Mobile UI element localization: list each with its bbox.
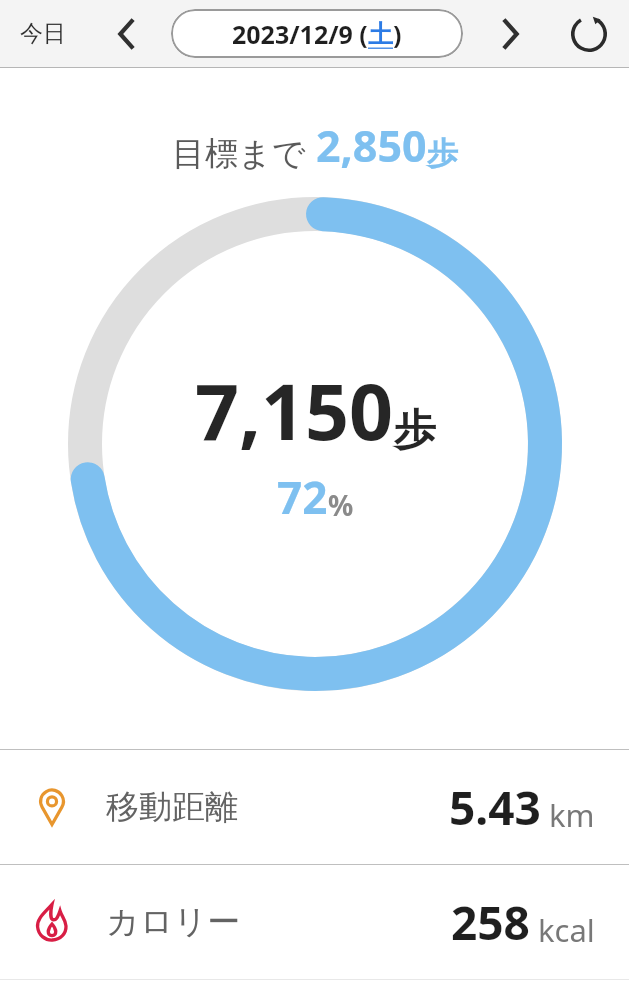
other: Calories [32, 902, 72, 942]
button[interactable]: 2023/12/9 ( [171, 9, 463, 58]
staticText: 土 [368, 19, 393, 50]
button[interactable]: Distance [0, 750, 629, 864]
button[interactable]: 今日 [14, 13, 72, 54]
staticText: 258 [451, 891, 530, 954]
button[interactable]: Previous day [104, 12, 148, 56]
staticText: 2023/12/9 ( [232, 17, 368, 51]
staticText: 移動距離 [106, 786, 238, 828]
staticText: 2,850 [316, 116, 427, 175]
staticText: カロリー [106, 901, 241, 943]
other: Distance [32, 787, 72, 827]
button[interactable]: Calories [0, 865, 629, 979]
staticText: 今日 [20, 19, 66, 48]
staticText: 72 [277, 467, 328, 527]
staticText: 7,150 [195, 358, 394, 463]
staticText: 5.43 [449, 776, 541, 839]
staticText: % [328, 486, 354, 524]
button[interactable]: Refresh [563, 8, 615, 60]
staticText: 目標まで [172, 133, 306, 175]
staticText: kcal [538, 909, 595, 951]
staticText: 歩 [427, 134, 458, 173]
staticText: km [549, 794, 595, 836]
staticText: 歩 [394, 404, 436, 457]
staticText: ) [393, 17, 402, 51]
button[interactable]: Next day [489, 12, 533, 56]
